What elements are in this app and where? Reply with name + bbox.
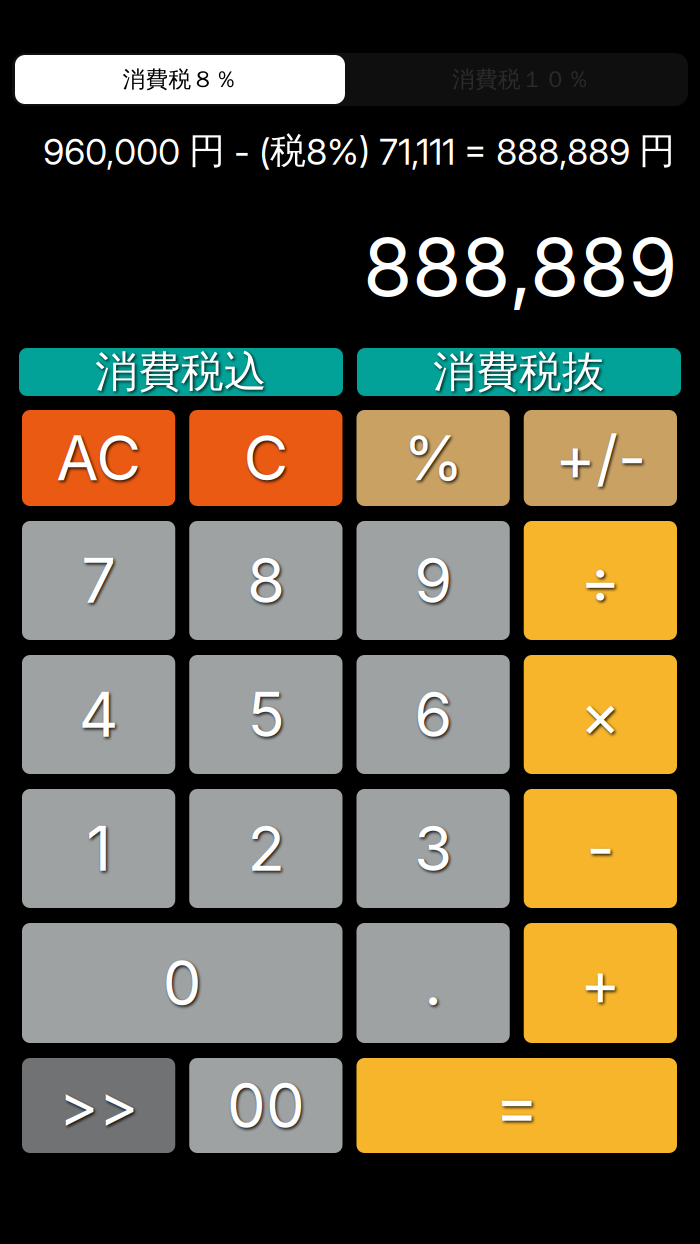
- button[interactable]: 5: [189, 655, 342, 774]
- staticText: C: [243, 421, 288, 495]
- staticText: 9: [414, 543, 452, 618]
- button[interactable]: AC: [22, 410, 175, 506]
- staticText: -: [586, 811, 614, 886]
- staticText: 888,889: [363, 219, 678, 315]
- button[interactable]: ×: [524, 655, 677, 774]
- button[interactable]: +: [524, 923, 677, 1043]
- staticText: ÷: [580, 543, 621, 618]
- button[interactable]: 消費税１０％: [356, 55, 686, 104]
- staticText: .: [424, 946, 442, 1020]
- staticText: 消費税抜: [433, 345, 605, 399]
- staticText: 7: [81, 543, 116, 618]
- staticText: 8: [247, 543, 285, 618]
- staticText: AC: [56, 421, 141, 495]
- staticText: ×: [580, 677, 621, 752]
- button[interactable]: C: [189, 410, 342, 506]
- button[interactable]: =: [356, 1058, 677, 1153]
- staticText: %: [403, 421, 463, 495]
- staticText: 00: [227, 1068, 305, 1143]
- staticText: 6: [414, 677, 452, 752]
- button[interactable]: 2: [189, 789, 342, 908]
- button[interactable]: 3: [356, 789, 510, 908]
- button[interactable]: 6: [356, 655, 510, 774]
- button[interactable]: +/-: [524, 410, 677, 506]
- staticText: 960,000 円 - (税8%) 71,111 = 888,889 円: [43, 128, 675, 174]
- button[interactable]: 9: [356, 521, 510, 640]
- button[interactable]: 7: [22, 521, 175, 640]
- staticText: +: [580, 946, 621, 1020]
- button[interactable]: 1: [22, 789, 175, 908]
- button[interactable]: 消費税抜: [357, 348, 681, 396]
- button[interactable]: ÷: [524, 521, 677, 640]
- staticText: +/-: [555, 421, 646, 495]
- staticText: 消費税８％: [122, 65, 237, 94]
- staticText: 4: [79, 677, 119, 752]
- button[interactable]: 消費税込: [19, 348, 343, 396]
- staticText: =: [495, 1065, 539, 1146]
- staticText: 0: [163, 946, 202, 1020]
- button[interactable]: 8: [189, 521, 342, 640]
- staticText: 3: [414, 811, 452, 886]
- button[interactable]: 消費税８％: [15, 55, 345, 104]
- button[interactable]: .: [356, 923, 510, 1043]
- button[interactable]: %: [356, 410, 510, 506]
- button[interactable]: 00: [189, 1058, 342, 1153]
- button[interactable]: 4: [22, 655, 175, 774]
- staticText: 2: [247, 811, 284, 886]
- staticText: >>: [59, 1069, 139, 1142]
- button[interactable]: >>: [22, 1058, 175, 1153]
- staticText: 5: [247, 677, 284, 752]
- staticText: 1: [86, 811, 111, 886]
- button[interactable]: -: [524, 789, 677, 908]
- staticText: 消費税込: [95, 345, 267, 399]
- button[interactable]: 0: [22, 923, 342, 1043]
- staticText: 消費税１０％: [452, 65, 590, 94]
